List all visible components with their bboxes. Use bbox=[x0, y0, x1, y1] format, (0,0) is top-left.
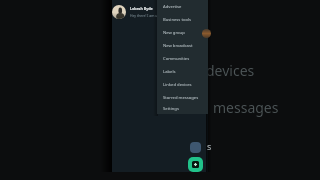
staticText: s bbox=[207, 140, 212, 152]
button[interactable]: Linked devices bbox=[157, 78, 208, 91]
button[interactable]: New chat bbox=[188, 157, 203, 172]
button[interactable]: New group bbox=[157, 26, 208, 39]
staticText: devices bbox=[206, 61, 255, 80]
staticText: messages bbox=[213, 98, 279, 117]
staticText: Business tools bbox=[163, 17, 192, 23]
button[interactable]: Advertise bbox=[157, 0, 208, 13]
staticText: New group bbox=[163, 30, 185, 36]
button[interactable]: Settings bbox=[157, 104, 208, 114]
button[interactable]: Communities bbox=[157, 52, 208, 65]
staticText: Lokesh Byde bbox=[130, 6, 153, 11]
staticText: Settings bbox=[163, 106, 179, 112]
staticText: Hey there! I am using bbox=[130, 13, 164, 18]
staticText: New broadcast bbox=[163, 43, 193, 49]
staticText: Labels bbox=[163, 69, 176, 75]
button[interactable]: Starred messages bbox=[157, 91, 208, 104]
button[interactable]: Business tools bbox=[157, 13, 208, 26]
button[interactable]: Lokesh Byde bbox=[112, 0, 208, 23]
staticText: Advertise bbox=[163, 4, 182, 10]
staticText: Linked devices bbox=[163, 82, 192, 88]
button[interactable]: New broadcast bbox=[157, 39, 208, 52]
staticText: Communities bbox=[163, 56, 190, 62]
button[interactable]: Labels bbox=[157, 65, 208, 78]
staticText: Starred messages bbox=[163, 95, 199, 101]
